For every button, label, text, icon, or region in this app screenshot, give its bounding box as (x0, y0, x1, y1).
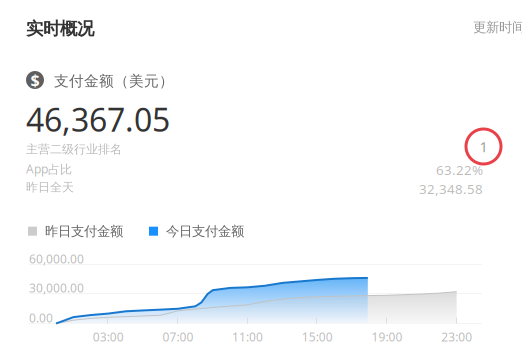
staticText: 46,367.05 (26, 98, 170, 140)
staticText: 19:00 (371, 329, 402, 345)
staticText: 63.22% (436, 161, 483, 179)
button[interactable]: 昨日支付金额 (28, 223, 123, 239)
staticText: 15:00 (302, 329, 333, 345)
staticText: 昨日全天 (26, 180, 74, 195)
staticText: 实时概况 (26, 18, 94, 39)
button[interactable]: 今日支付金额 (149, 223, 244, 239)
staticText: 主营二级行业排名 (26, 142, 122, 157)
staticText: App占比 (26, 161, 72, 177)
staticText: 支付金额（美元） (54, 72, 174, 90)
staticText: 07:00 (162, 329, 193, 345)
staticText: 30,000.00 (29, 280, 84, 296)
staticText: 1 (479, 137, 487, 156)
staticText: $ (30, 69, 39, 91)
staticText: 11:00 (232, 329, 263, 345)
staticText: 32,348.58 (419, 180, 483, 198)
button[interactable]: 更新时间 (473, 19, 522, 35)
staticText: 03:00 (93, 329, 124, 345)
staticText: 今日支付金额 (166, 223, 244, 239)
staticText: 23:00 (441, 329, 472, 345)
staticText: 0.00 (29, 310, 53, 326)
staticText: 60,000.00 (29, 251, 84, 267)
staticText: 昨日支付金额 (45, 223, 123, 239)
staticText: 更新时间 (473, 19, 522, 35)
